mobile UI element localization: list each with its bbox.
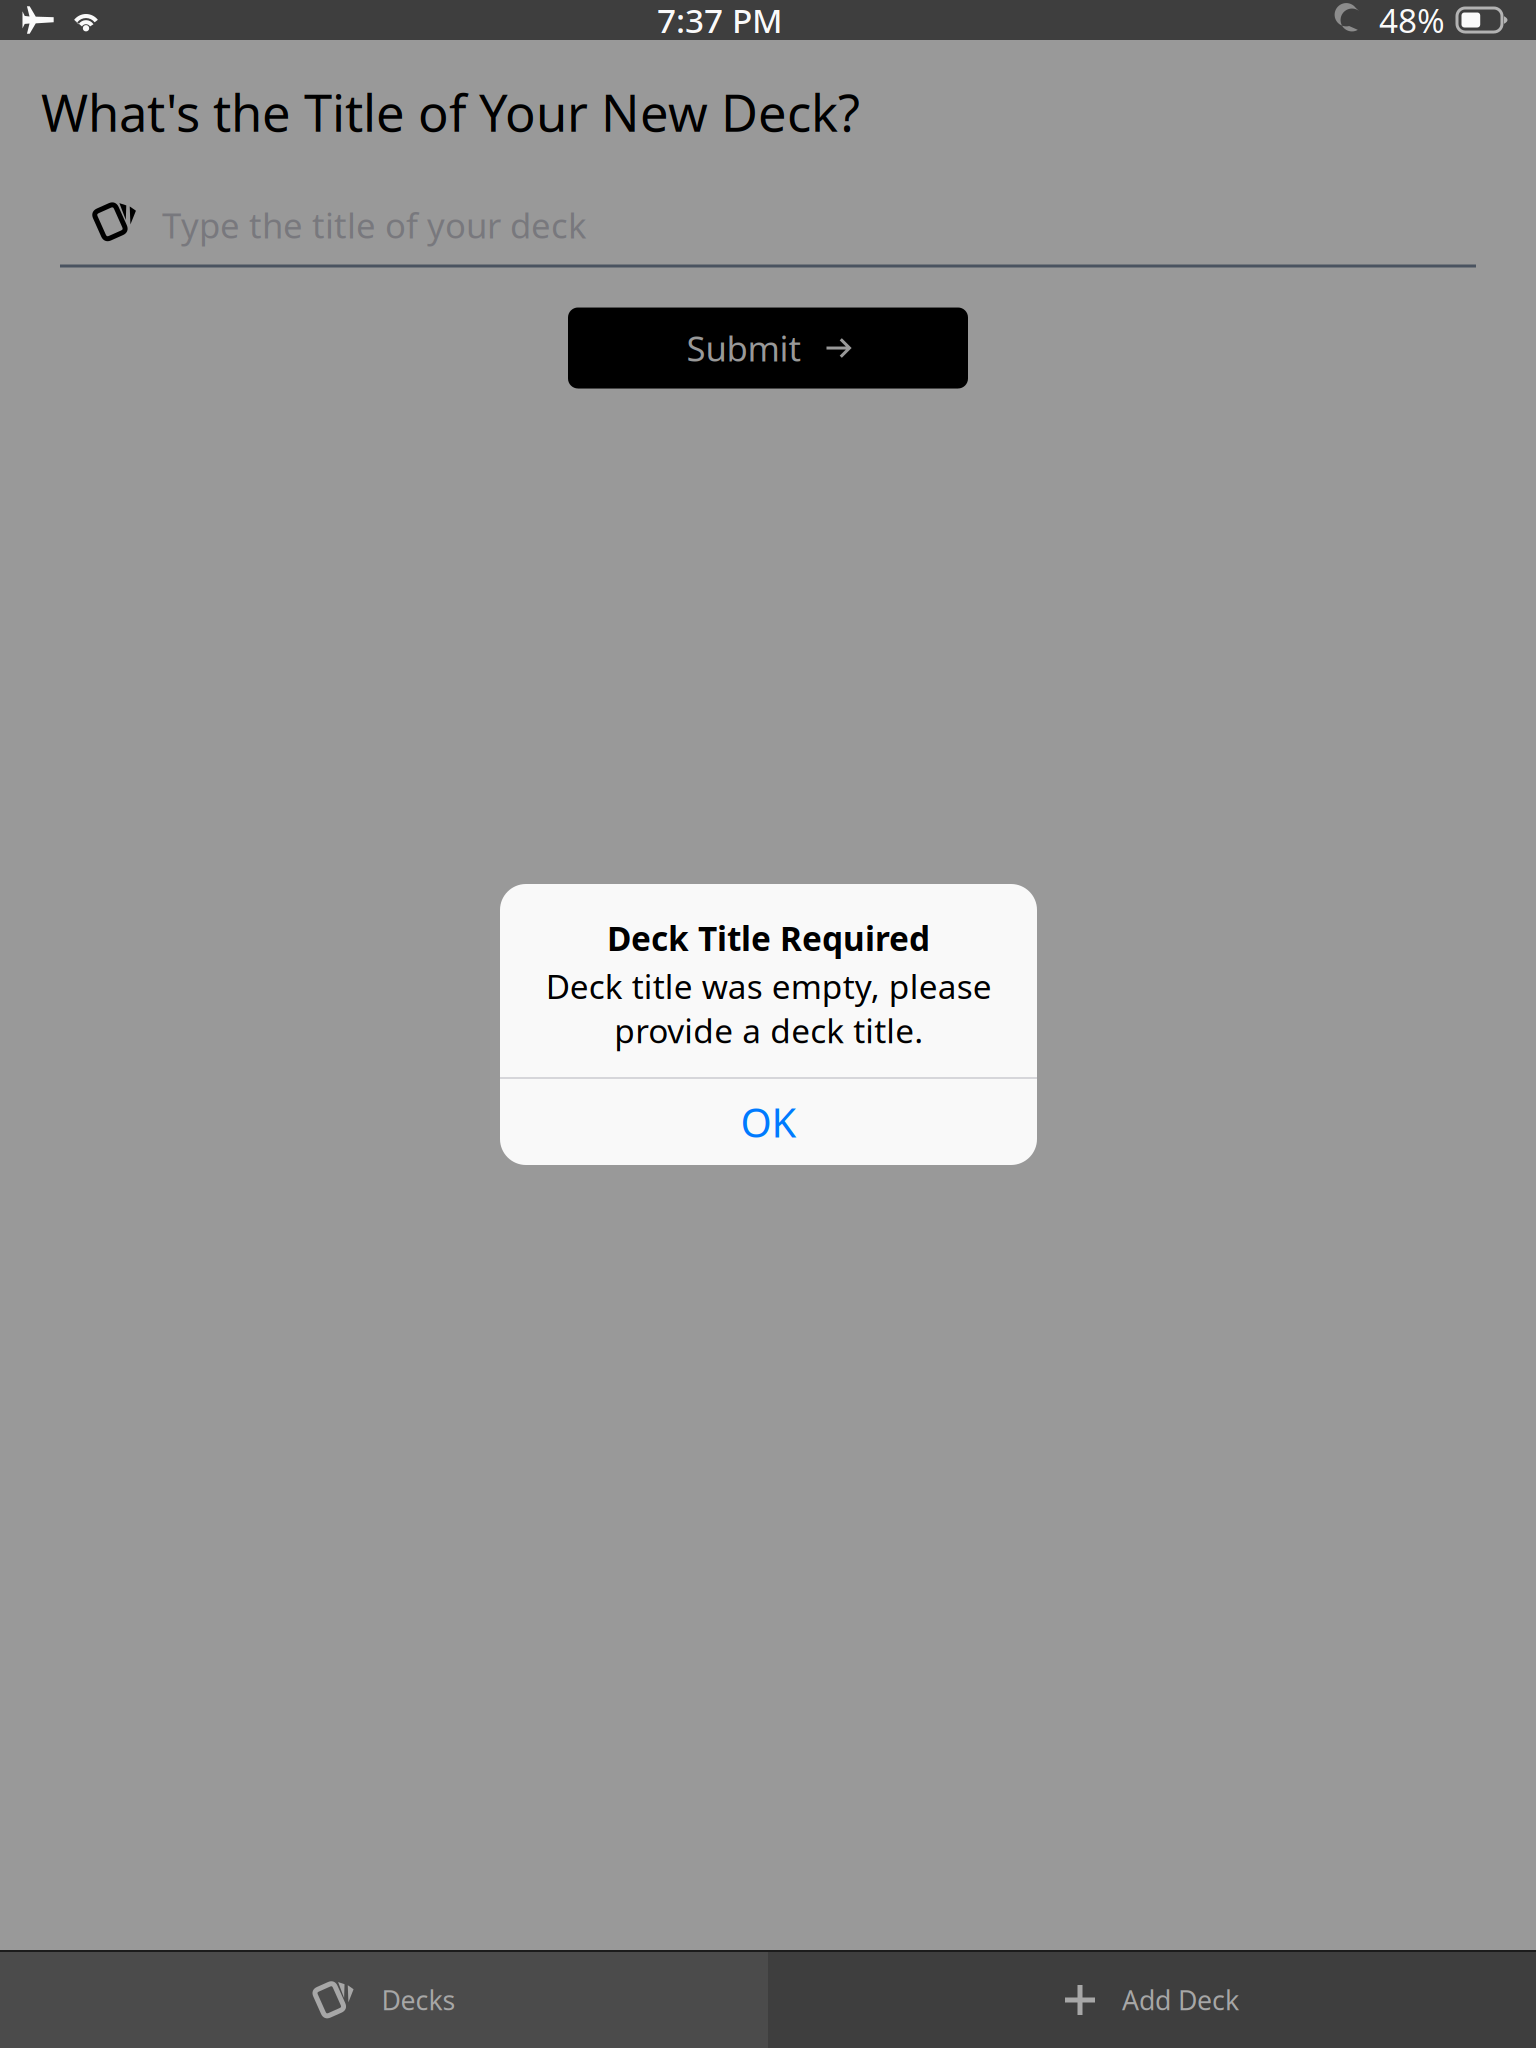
staticText: OK	[740, 1095, 796, 1148]
button[interactable]: Submit	[568, 307, 968, 388]
button[interactable]: Deck title, Type the title of your deck	[60, 178, 1476, 268]
button[interactable]: Add Deck	[768, 1952, 1536, 2048]
staticText: Add Deck	[1122, 1982, 1239, 2018]
staticText: Deck title was empty, please provide a d…	[545, 964, 991, 1052]
staticText: Deck Title Required	[607, 916, 930, 960]
button[interactable]: OK	[500, 1079, 1037, 1165]
button[interactable]: Decks	[0, 1952, 768, 2048]
staticText: What's the Title of Your New Deck?	[41, 78, 860, 146]
staticText: Submit	[686, 325, 801, 371]
staticText: Decks	[381, 1982, 455, 2018]
staticText: 7:37 PM	[657, 0, 783, 42]
staticText: 48%	[1379, 0, 1445, 42]
staticText: Type the title of your deck	[162, 202, 587, 248]
